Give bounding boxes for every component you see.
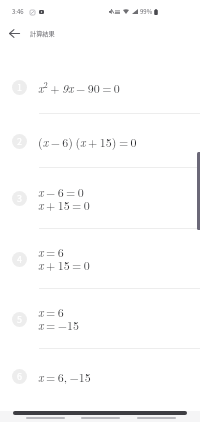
staticText: 99% [140,7,153,16]
staticText: x + 15 = 0 [38,256,90,273]
staticText: 3:46 [12,7,24,16]
staticText: 5 [17,313,22,326]
button[interactable]: Home [81,417,120,419]
button[interactable]: 1 [0,60,200,114]
staticText: x = 6 [38,303,64,320]
staticText: x − 6 = 0 [38,183,84,200]
staticText: 1 [17,81,22,94]
staticText: x = −15 [38,316,80,333]
button[interactable]: Back [26,417,65,419]
staticText: 6 [17,370,22,383]
staticText: x2 + 9x − 90 = 0 [38,79,120,96]
button[interactable]: 6 [0,349,200,403]
button[interactable]: 3 [0,168,200,229]
staticText: 4 [17,253,22,266]
staticText: 3 [17,192,22,205]
staticText: x + 15 = 0 [38,196,90,213]
button[interactable]: 4 [0,229,200,289]
button[interactable]: 2 [0,114,200,168]
staticText: (x − 6) (x + 15) = 0 [38,133,137,150]
staticText: x = 6 [38,243,64,260]
staticText: 2 [17,135,22,148]
button[interactable]: Back [1,20,28,47]
button[interactable]: Recents [137,417,176,419]
staticText: x = 6, −15 [38,368,91,385]
button[interactable]: 5 [0,289,200,349]
staticText: 計算結果 [30,29,55,38]
